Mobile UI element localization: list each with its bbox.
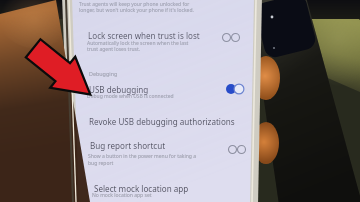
button[interactable]: Lock screen when trust is lost (88, 30, 200, 41)
staticText: No mock location app set (92, 192, 152, 199)
staticText: Trust agents will keep your phone unlock… (79, 1, 190, 8)
button[interactable]: Lock screen when trust is lost (222, 33, 240, 42)
staticText: longer, but won't unlock your phone if i… (79, 7, 194, 14)
staticText: Automatically lock the screen when the l… (87, 40, 189, 47)
button[interactable]: Bug report shortcut (90, 140, 166, 151)
button[interactable]: USB debugging (89, 84, 149, 95)
button[interactable]: Bug report shortcut (228, 145, 246, 154)
button[interactable]: Select mock location app (94, 183, 189, 194)
button[interactable]: USB debugging (226, 84, 244, 94)
staticText: trust agent loses trust. (87, 46, 141, 53)
staticText: bug report (88, 160, 114, 167)
staticText: Show a button in the power menu for taki… (88, 153, 197, 160)
staticText: Debug mode when USB is connected (87, 93, 174, 100)
button[interactable]: Revoke USB debugging authorizations (89, 116, 235, 127)
staticText: Debugging (89, 70, 118, 77)
